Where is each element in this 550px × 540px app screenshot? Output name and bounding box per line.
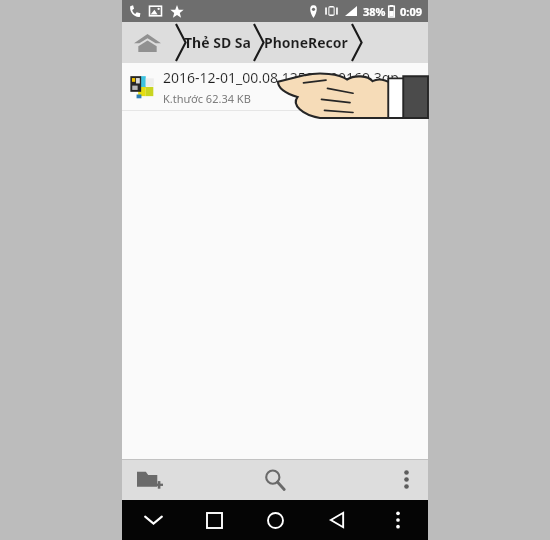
button[interactable]: Menu (367, 500, 428, 540)
button[interactable]: PhoneRecord (264, 22, 348, 63)
staticText: Thẻ SD SanDisk (184, 33, 250, 52)
button[interactable]: Back (306, 500, 367, 540)
button[interactable]: Home (122, 22, 172, 63)
button[interactable]: New folder (122, 459, 222, 500)
staticText: K.thước 62.34 KB (163, 91, 251, 106)
button[interactable]: Recents (184, 500, 245, 540)
staticText: PhoneRecord (264, 33, 348, 52)
button[interactable]: Search (222, 459, 328, 500)
button[interactable]: Thẻ SD SanDisk (184, 22, 250, 63)
staticText: 0:09 (400, 4, 422, 19)
staticText: 38% (363, 4, 386, 19)
button[interactable]: More options (328, 459, 428, 500)
button[interactable]: Hide navigation bar (122, 500, 184, 540)
button[interactable]: 2016-12-01_00.08.13583400169.3gp (122, 63, 428, 111)
staticText: 2016-12-01_00.08.13583400169.3gp (163, 68, 399, 87)
button[interactable]: Home (245, 500, 306, 540)
